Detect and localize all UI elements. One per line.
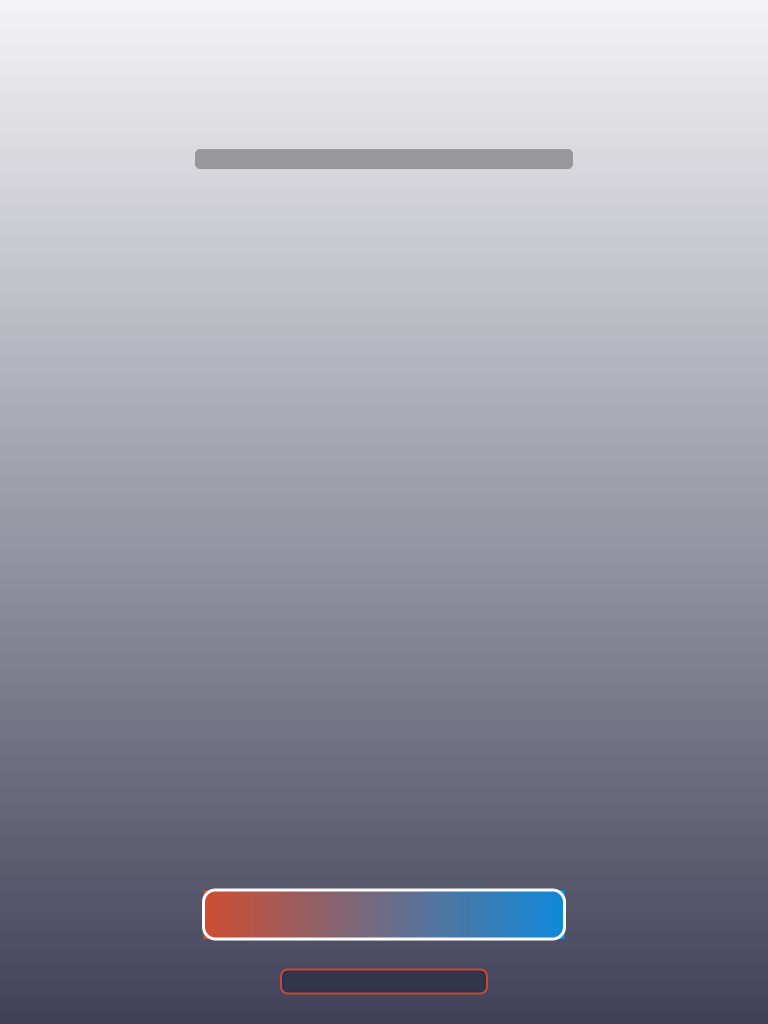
button[interactable]: Secondary action	[281, 969, 487, 993]
button[interactable]: Continue	[203, 890, 564, 939]
